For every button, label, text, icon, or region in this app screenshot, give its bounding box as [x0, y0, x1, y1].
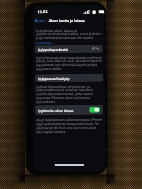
staticText: 97 %	[92, 47, 100, 51]
button[interactable]: Huippukapasiteetti	[35, 45, 103, 53]
staticText: Akku	[38, 18, 46, 23]
button[interactable]: Huippusuorituskyky	[35, 74, 103, 82]
staticText: Huippusuorituskyky	[38, 76, 70, 80]
staticText: Sallivat dynaamisen ohjelmisto- ja laitt…	[36, 84, 93, 104]
staticText: Tämä ilmaisee akun kapasiteetin suhteute…	[36, 55, 102, 71]
staticText: Akun käyttämisen vähentämiseksi iPhone o…	[36, 117, 102, 134]
staticText: Optimoitu akun lataus	[38, 108, 74, 112]
button[interactable]: Akku	[34, 18, 47, 23]
staticText: Akun kunto ja lataus	[49, 18, 86, 23]
staticText: 11.02	[38, 9, 48, 14]
button[interactable]: Optimoitu akun lataus	[89, 107, 100, 113]
button[interactable]: Optimoitu akun lataus	[35, 105, 103, 115]
staticText: Lisätietoja...	[35, 40, 54, 45]
staticText: Huippukapasiteetti	[38, 47, 69, 51]
staticText: Puhelimesi akun, lataus-ja asetteluomina…	[36, 28, 102, 40]
